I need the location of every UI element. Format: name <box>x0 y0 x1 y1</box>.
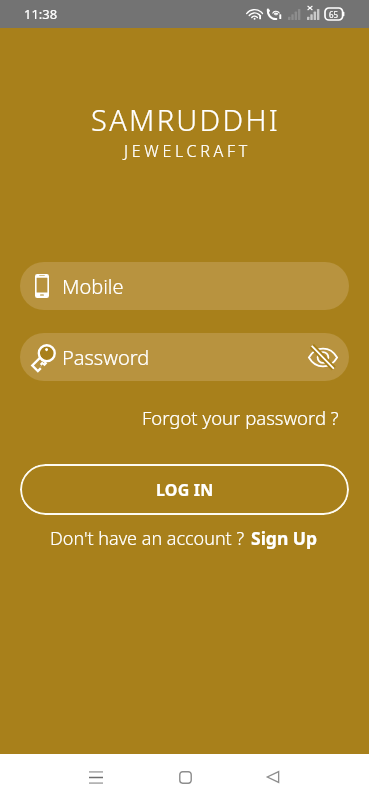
button[interactable]: Password <box>20 333 349 381</box>
button[interactable]: Sign Up <box>249 522 320 554</box>
staticText: Mobile <box>62 273 124 300</box>
staticText: 11:38 <box>24 5 58 23</box>
button[interactable]: Mobile <box>20 262 349 310</box>
staticText: Forgot your password ? <box>142 405 339 430</box>
button[interactable]: LOG IN <box>20 464 349 515</box>
staticText: 65 <box>329 9 339 20</box>
staticText: LOG IN <box>156 479 214 501</box>
staticText: SAMRUDDHI <box>1 100 369 139</box>
staticText: Don't have an account ? <box>50 526 249 551</box>
button[interactable]: Home <box>162 754 208 800</box>
button[interactable]: Back <box>250 754 296 800</box>
staticText: Password <box>62 344 150 371</box>
button[interactable]: Recent apps <box>73 754 119 800</box>
button[interactable]: Show password <box>307 341 339 373</box>
button[interactable]: Forgot your password ? <box>134 399 347 436</box>
staticText: Sign Up <box>251 526 318 550</box>
staticText: JEWELCRAFT <box>3 140 369 162</box>
